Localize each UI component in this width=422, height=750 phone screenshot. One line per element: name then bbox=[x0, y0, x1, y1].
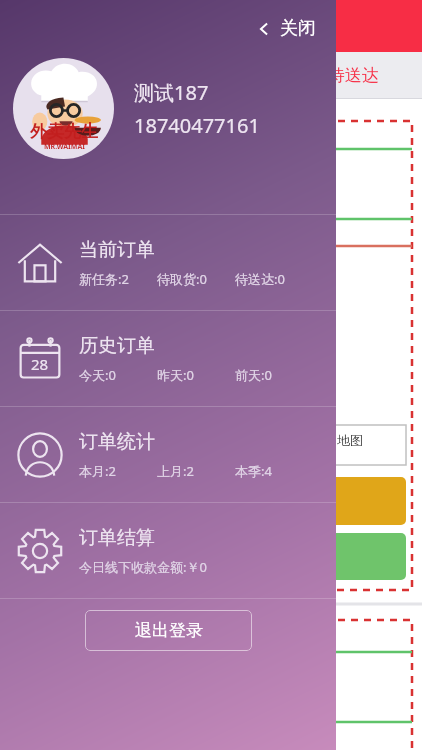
staticText: 新任务:2 bbox=[79, 270, 157, 288]
staticText: 待送达:0 bbox=[235, 270, 313, 288]
button[interactable]: 订单统计 bbox=[0, 407, 336, 502]
staticText: 今天:0 bbox=[79, 366, 157, 384]
staticText: 订单统计 bbox=[79, 430, 155, 454]
staticText: 本季:4 bbox=[235, 462, 313, 480]
staticText: 昨天:0 bbox=[157, 366, 235, 384]
staticText: 历史订单 bbox=[79, 334, 155, 358]
staticText: 今日线下收款金额:￥0 bbox=[79, 558, 299, 576]
staticText: 待送达 bbox=[328, 65, 379, 86]
staticText: 订单结算 bbox=[79, 526, 155, 550]
staticText: 地图 bbox=[337, 432, 363, 448]
staticText: 待取货:0 bbox=[157, 270, 235, 288]
button[interactable]: 关闭 bbox=[251, 12, 322, 45]
staticText: MR.WAIMAI bbox=[44, 142, 85, 152]
staticText: 28 bbox=[31, 354, 49, 374]
button[interactable]: 订单结算 bbox=[0, 503, 336, 598]
staticText: 测试187 bbox=[134, 79, 209, 106]
staticText: 本月:2 bbox=[79, 462, 157, 480]
staticText: 上月:2 bbox=[157, 462, 235, 480]
button[interactable]: 当前订单 bbox=[0, 215, 336, 310]
staticText: 外卖先生 bbox=[30, 121, 98, 142]
staticText: 前天:0 bbox=[235, 366, 313, 384]
staticText: 当前订单 bbox=[79, 238, 155, 262]
staticText: 18740477161 bbox=[134, 112, 260, 139]
staticText: 退出登录 bbox=[135, 620, 203, 641]
button[interactable]: 退出登录 bbox=[85, 610, 252, 651]
button[interactable]: 28 bbox=[0, 311, 336, 406]
staticText: 关闭 bbox=[280, 17, 316, 40]
